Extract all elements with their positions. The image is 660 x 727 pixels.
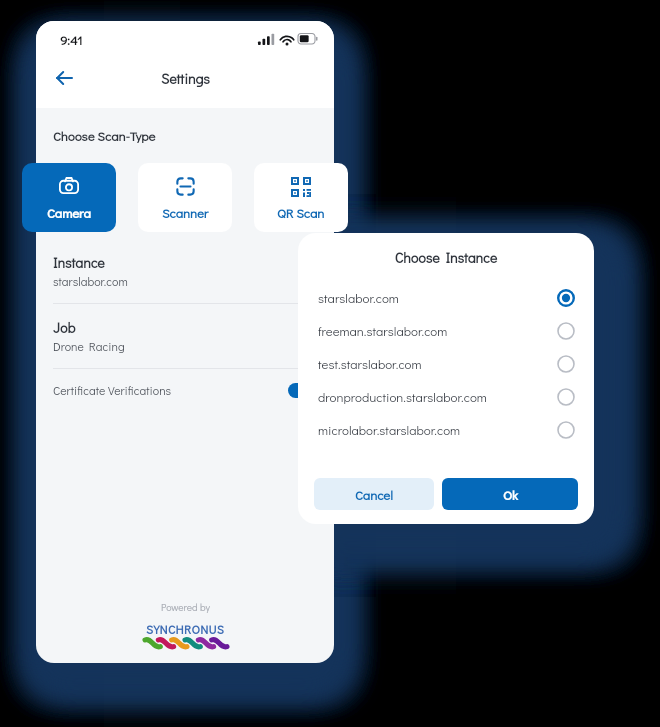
button[interactable]: Back	[45, 59, 83, 97]
button[interactable]: Certificate Verifications	[53, 369, 317, 411]
staticText: Certificate Verifications	[53, 382, 288, 398]
button[interactable]: Ok	[442, 478, 578, 510]
staticText: Instance	[53, 253, 105, 271]
staticText: Choose Instance	[298, 248, 594, 266]
staticText: microlabor.starslabor.com	[318, 421, 557, 438]
button[interactable]: dronproduction.starslabor.com	[318, 380, 575, 413]
button[interactable]: test.starslabor.com	[318, 347, 575, 380]
staticText: freeman.starslabor.com	[318, 322, 557, 339]
staticText: Cancel	[355, 486, 393, 503]
button[interactable]: microlabor.starslabor.com	[318, 413, 575, 446]
staticText: Settings	[161, 69, 210, 87]
button[interactable]: Camera	[22, 163, 116, 232]
button[interactable]: QR Scan	[254, 163, 348, 232]
staticText: Powered by	[161, 601, 210, 614]
staticText: SYNCHRONUS	[146, 621, 225, 637]
button[interactable]: Instance	[53, 239, 317, 303]
staticText: Camera	[47, 204, 91, 221]
button[interactable]: freeman.starslabor.com	[318, 314, 575, 347]
staticText: 9:41	[60, 31, 83, 48]
staticText: Scanner	[162, 204, 209, 221]
staticText: Drone Racing	[53, 338, 125, 354]
staticText: Choose Scan-Type	[53, 127, 156, 144]
staticText: Ok	[503, 486, 518, 503]
button[interactable]: Cancel	[314, 478, 434, 510]
button[interactable]: Job	[53, 304, 317, 368]
staticText: starslabor.com	[53, 273, 128, 289]
staticText: test.starslabor.com	[318, 355, 557, 372]
staticText: starslabor.com	[318, 289, 557, 306]
staticText: QR Scan	[277, 204, 325, 221]
staticText: Job	[53, 318, 76, 336]
button[interactable]: starslabor.com	[318, 281, 575, 314]
button[interactable]: Scanner	[138, 163, 232, 232]
staticText: dronproduction.starslabor.com	[318, 388, 557, 405]
